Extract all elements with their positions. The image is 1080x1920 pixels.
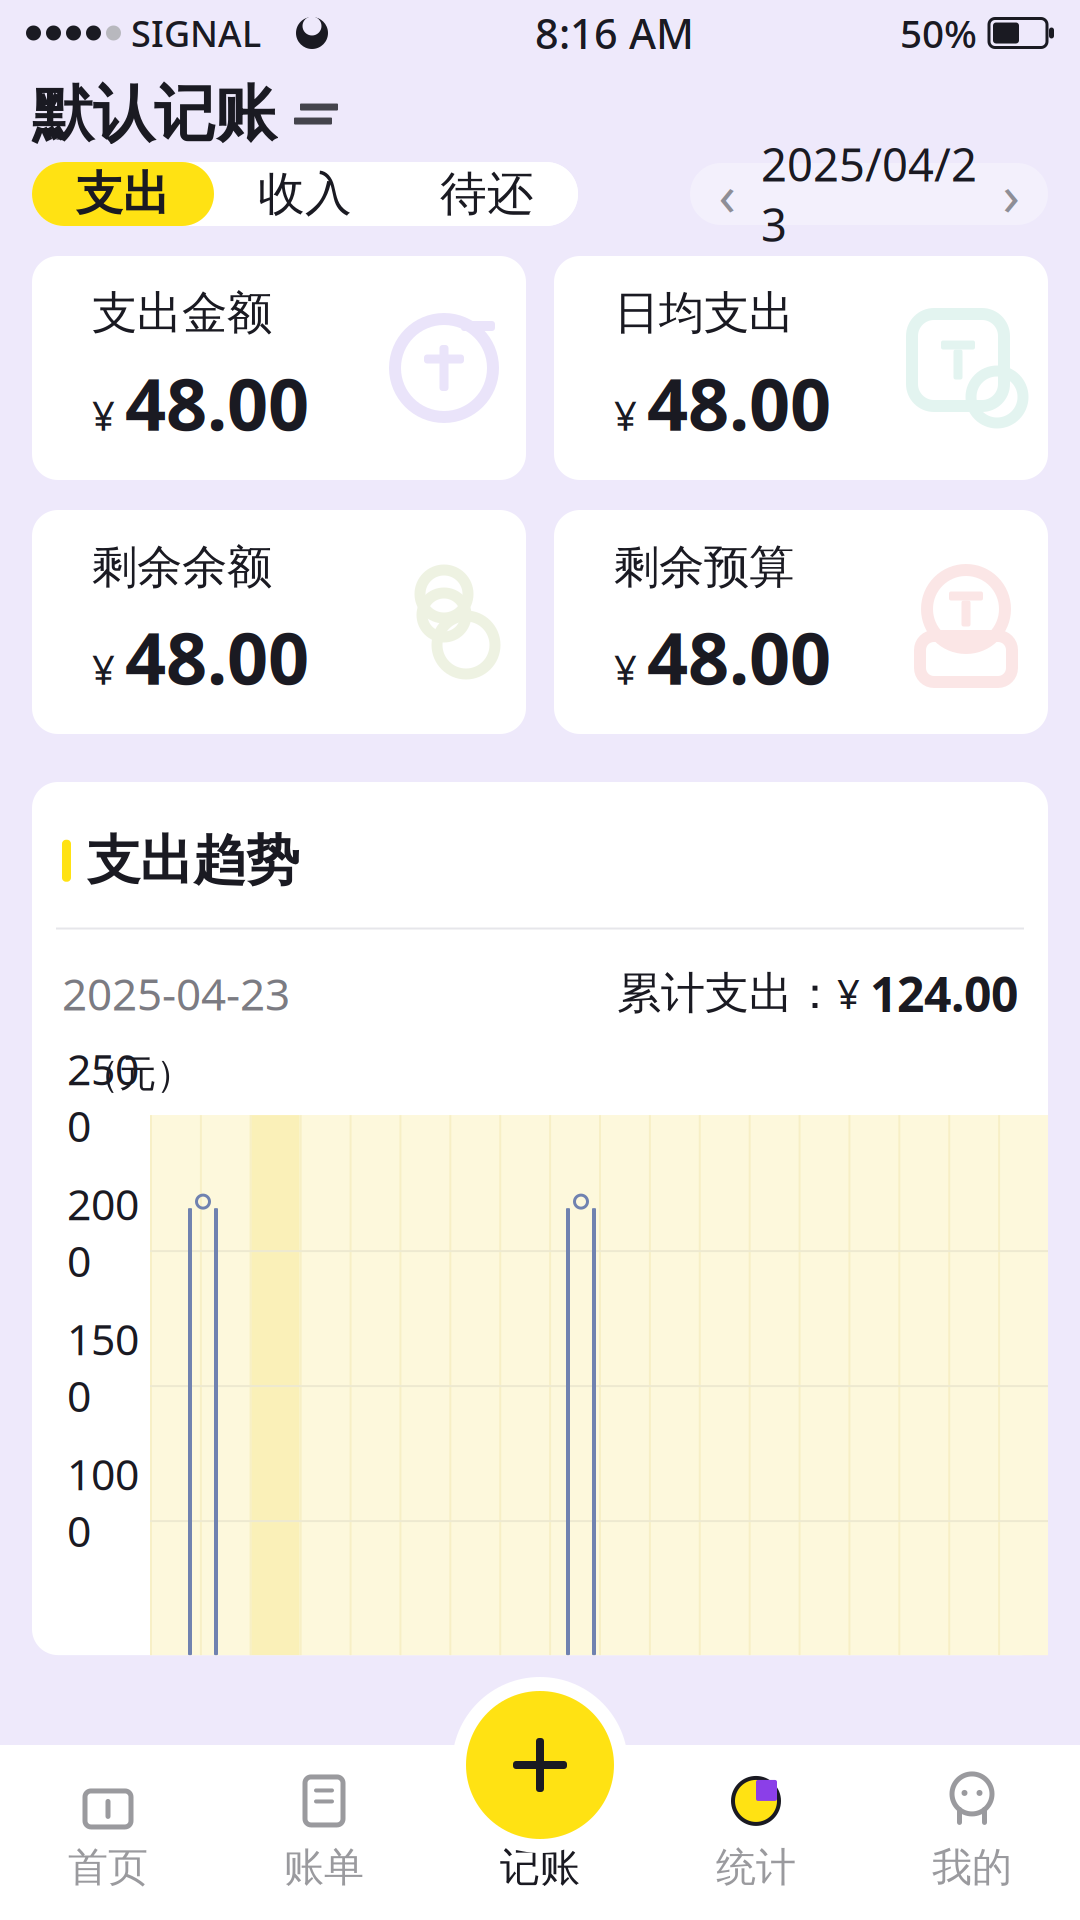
button[interactable]: 记账 [432, 1757, 648, 1907]
staticText: ¥ [614, 643, 637, 696]
button[interactable]: 剩余预算 [554, 510, 1048, 734]
button[interactable]: 统计 [648, 1757, 864, 1907]
staticText: 48.00 [125, 355, 309, 451]
staticText: 支出 [76, 165, 170, 223]
staticText: 剩余预算 [614, 539, 794, 595]
button[interactable]: 支出金额 [32, 256, 526, 480]
staticText: 1000 [67, 1445, 139, 1559]
button[interactable]: 首页 [0, 1757, 216, 1907]
button[interactable]: 支出 [32, 162, 214, 226]
staticText: 我的 [932, 1843, 1012, 1892]
staticText: 支出金额 [92, 285, 272, 341]
staticText: ¥ [92, 389, 115, 442]
staticText: ¥ [92, 643, 115, 696]
staticText: 账单 [284, 1843, 364, 1892]
staticText: 记账 [500, 1843, 580, 1892]
button[interactable]: 待还 [396, 162, 578, 226]
staticText: 48.00 [647, 355, 831, 451]
staticText: 2025/04/23 [761, 134, 977, 254]
staticText: › [1002, 157, 1019, 231]
staticText: 首页 [68, 1843, 148, 1892]
button[interactable]: 收入 [214, 162, 396, 226]
staticText: 48.00 [125, 609, 309, 705]
staticText: 累计支出： [617, 966, 837, 1020]
staticText: 默认记账 [32, 76, 276, 152]
staticText: 日均支出 [614, 285, 794, 341]
staticText: 2000 [67, 1175, 139, 1289]
staticText: ¥ [614, 389, 637, 442]
staticText: 剩余余额 [92, 539, 272, 595]
staticText: 8:16 AM [535, 6, 694, 60]
staticText: SIGNAL [131, 9, 261, 57]
button[interactable]: 我的 [864, 1757, 1080, 1907]
staticText: 50% [900, 7, 977, 59]
staticText: 支出趋势 [87, 828, 299, 893]
button[interactable]: 日均支出 [554, 256, 1048, 480]
staticText: 收入 [258, 165, 352, 223]
staticText: 48.00 [647, 609, 831, 705]
staticText: 1500 [67, 1310, 139, 1424]
staticText: 待还 [440, 165, 534, 223]
staticText: ¥ [837, 967, 870, 1020]
staticText: ‹ [718, 157, 735, 231]
staticText: （元） [82, 1051, 193, 1097]
staticText: 统计 [716, 1843, 796, 1892]
button[interactable]: 记账 [466, 1670, 614, 1818]
button[interactable]: Previous day [700, 163, 754, 225]
staticText: 124.00 [870, 961, 1018, 1025]
staticText: 2500 [67, 1040, 139, 1154]
button[interactable]: Next day [984, 163, 1038, 225]
button[interactable]: 账单 [216, 1757, 432, 1907]
staticText: 2025-04-23 [62, 964, 290, 1023]
button[interactable]: 剩余余额 [32, 510, 526, 734]
